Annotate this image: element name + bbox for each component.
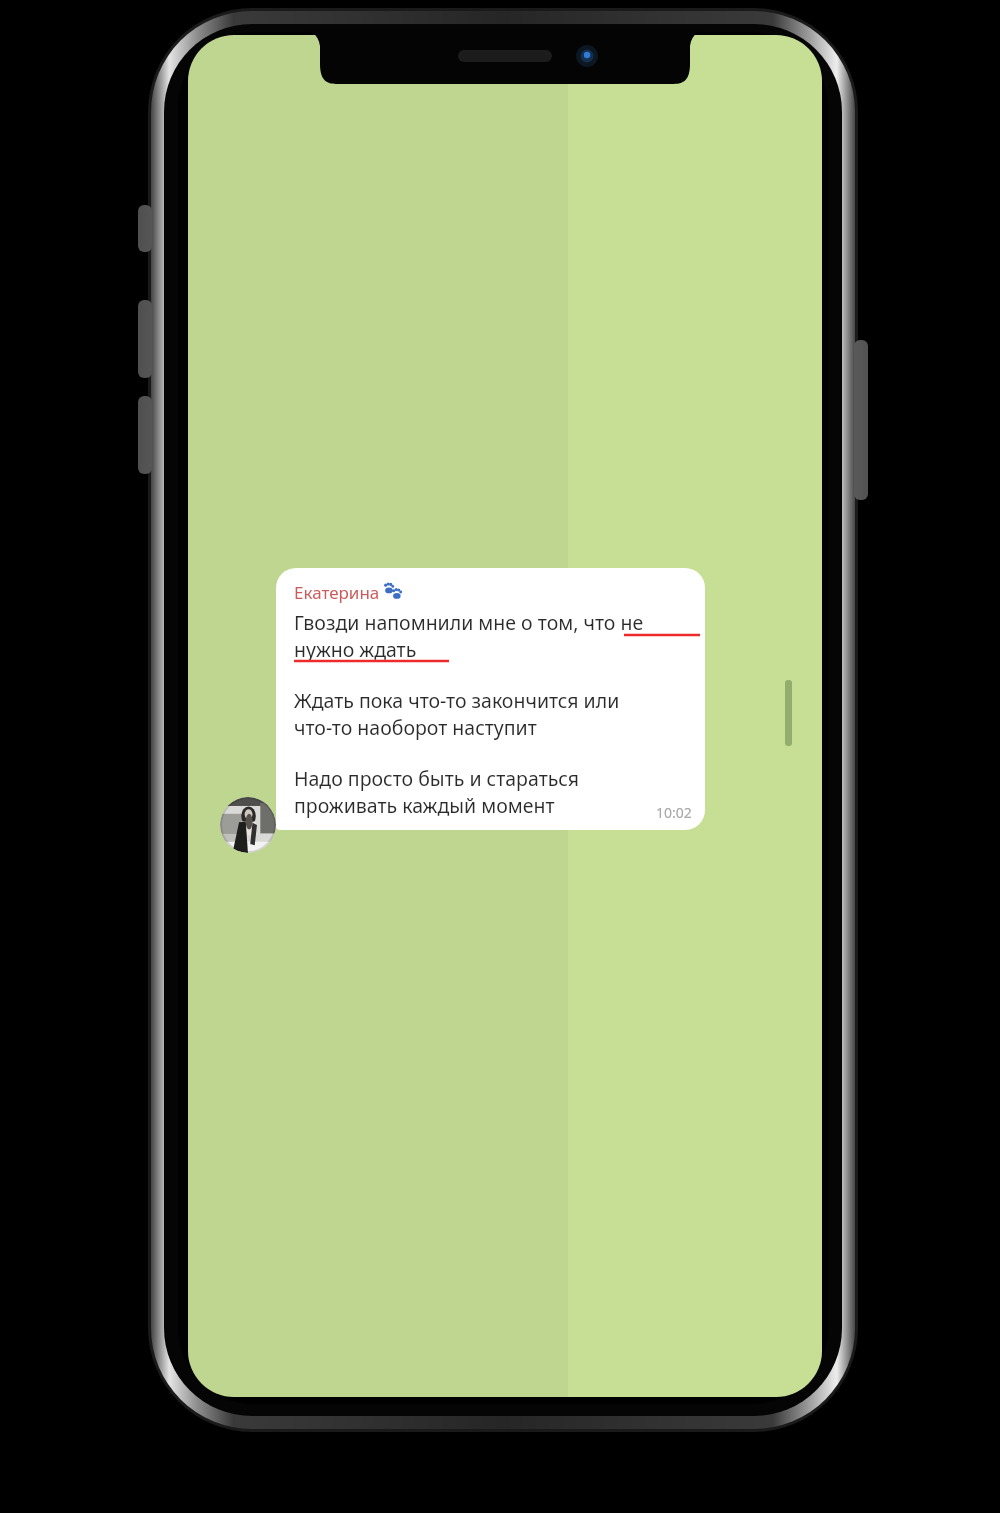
staticText: Гвозди напомнили мне о том, что не: [294, 609, 644, 636]
button[interactable]: Екатерина: [276, 568, 705, 830]
staticText: Надо просто быть и стараться: [294, 765, 579, 792]
staticText: нужно ждать: [294, 636, 417, 663]
staticText: Екатерина: [294, 581, 380, 604]
staticText: проживать каждый момент: [294, 792, 555, 819]
staticText: Ждать пока что-то закончится или: [294, 687, 620, 714]
staticText: 10:02: [656, 803, 692, 822]
staticText: что-то наоборот наступит: [294, 714, 537, 741]
button[interactable]: Avatar of Екатерина: [220, 797, 276, 853]
